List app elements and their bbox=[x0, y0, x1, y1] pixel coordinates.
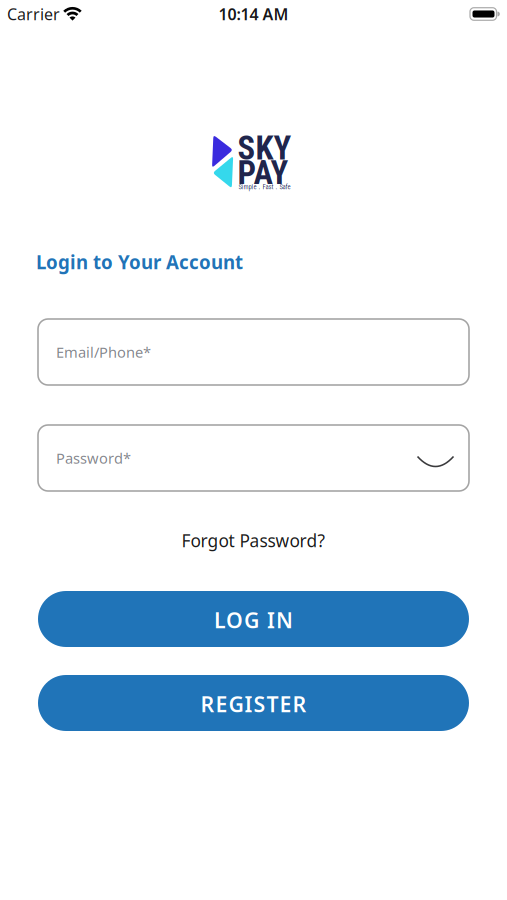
staticText: PAY bbox=[237, 154, 288, 192]
button[interactable]: Email/Phone* bbox=[0, 319, 507, 385]
staticText: SKY bbox=[237, 129, 291, 167]
button[interactable]: LOG IN bbox=[0, 591, 507, 647]
staticText: Password* bbox=[56, 448, 131, 468]
button[interactable]: Forgot Password? bbox=[181, 530, 325, 551]
staticText: Forgot Password? bbox=[181, 529, 325, 552]
staticText: Simple . Fast . Safe bbox=[238, 183, 290, 191]
staticText: 10:14 AM bbox=[218, 3, 288, 25]
staticText: Carrier bbox=[7, 3, 60, 25]
staticText: Email/Phone* bbox=[56, 342, 151, 362]
staticText: REGISTER bbox=[200, 690, 306, 718]
button[interactable]: REGISTER bbox=[0, 675, 507, 731]
staticText: LOG IN bbox=[214, 606, 293, 634]
staticText: Login to Your Account bbox=[36, 250, 243, 274]
button[interactable]: Password* bbox=[0, 425, 507, 491]
